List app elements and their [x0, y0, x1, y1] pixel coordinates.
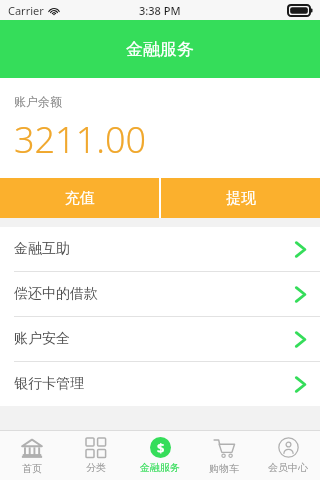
button[interactable]: 充值	[0, 178, 159, 218]
button[interactable]: 账户安全	[0, 317, 320, 361]
staticText: 分类	[86, 461, 106, 474]
other: 首页	[21, 437, 43, 459]
staticText: Carrier	[8, 3, 44, 18]
staticText: 账户余额	[14, 94, 62, 109]
button[interactable]: 购物车	[192, 431, 256, 480]
staticText: 3211.00	[14, 115, 147, 164]
staticText: $	[157, 439, 165, 457]
other: 金融服务	[150, 437, 171, 458]
button[interactable]: 金融服务	[128, 431, 192, 480]
button[interactable]: 银行卡管理	[0, 362, 320, 406]
staticText: 偿还中的借款	[14, 285, 98, 303]
other: 购物车	[213, 437, 235, 459]
button[interactable]: 偿还中的借款	[0, 272, 320, 316]
button[interactable]: 提现	[161, 178, 320, 218]
staticText: 首页	[22, 462, 42, 475]
button[interactable]: 首页	[0, 431, 64, 480]
button[interactable]: 金融互助	[0, 227, 320, 271]
staticText: 购物车	[209, 462, 239, 475]
staticText: 账户安全	[14, 330, 70, 348]
button[interactable]: 分类	[64, 431, 128, 480]
staticText: 会员中心	[268, 461, 308, 474]
staticText: 3:38 PM	[139, 3, 181, 18]
staticText: 金融服务	[126, 39, 194, 60]
staticText: 提现	[226, 189, 256, 208]
other: 会员中心	[278, 437, 299, 458]
staticText: 金融互助	[14, 240, 70, 258]
staticText: 金融服务	[140, 461, 180, 474]
other: 分类	[86, 438, 106, 458]
staticText: 充值	[65, 189, 95, 208]
staticText: 银行卡管理	[14, 375, 84, 393]
button[interactable]: 会员中心	[256, 431, 320, 480]
